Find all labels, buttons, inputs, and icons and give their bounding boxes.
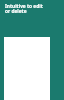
staticText: Intuitive to edit or delete	[5, 3, 43, 14]
